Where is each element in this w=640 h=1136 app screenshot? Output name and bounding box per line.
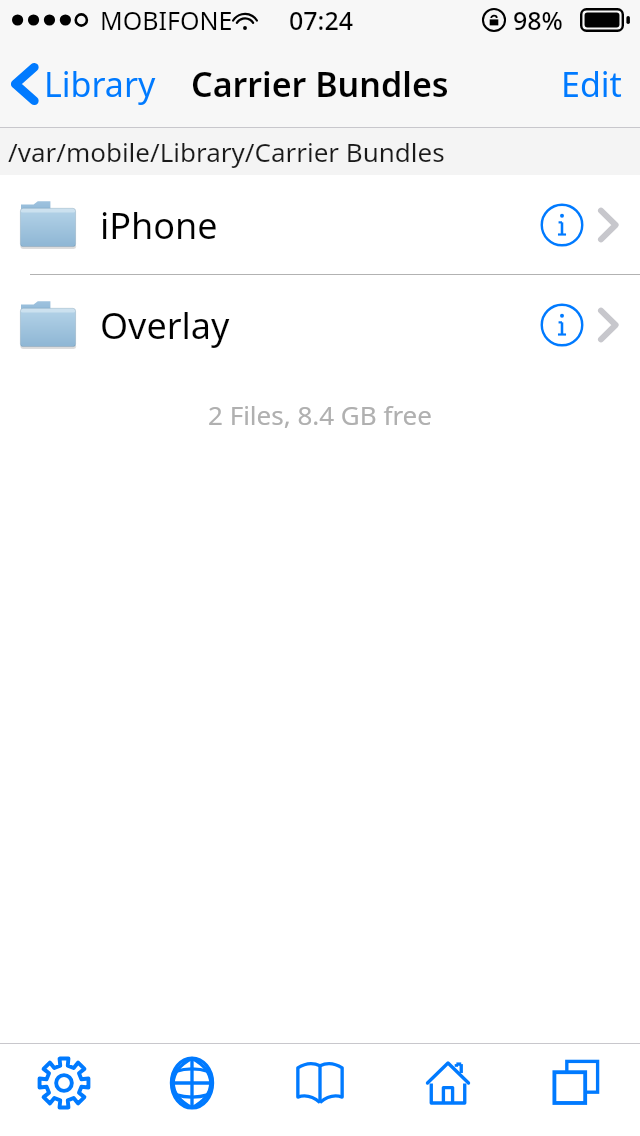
staticText: Edit [561, 61, 622, 107]
staticText: Overlay [100, 301, 230, 350]
button[interactable]: Info about iPhone [530, 193, 594, 257]
button[interactable]: Settings [0, 1044, 128, 1136]
staticText: /var/mobile/Library/Carrier Bundles [8, 134, 445, 169]
button[interactable]: Library [0, 53, 168, 115]
button[interactable]: Bookmarks [256, 1044, 384, 1136]
button[interactable]: Home [384, 1044, 512, 1136]
button[interactable]: iPhone [0, 175, 640, 275]
button[interactable]: Info about Overlay [530, 293, 594, 357]
staticText: 98% [513, 3, 563, 37]
button[interactable]: Tabs [512, 1044, 640, 1136]
staticText: 2 Files, 8.4 GB free [208, 397, 432, 432]
staticText: iPhone [100, 201, 218, 250]
staticText: Library [44, 61, 156, 107]
button[interactable]: Browser [128, 1044, 256, 1136]
staticText: MOBIFONE [100, 3, 233, 37]
staticText: 07:24 [289, 3, 354, 37]
button[interactable]: Edit [543, 51, 640, 117]
staticText: Carrier Bundles [191, 61, 449, 107]
button[interactable]: Overlay [0, 275, 640, 375]
